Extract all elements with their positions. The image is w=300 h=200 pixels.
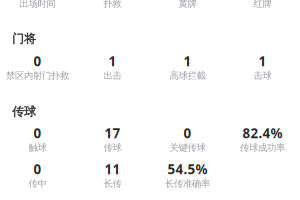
staticText: 17 (104, 124, 120, 142)
staticText: 出击 (103, 70, 121, 81)
staticText: 关键传球 (169, 142, 205, 153)
staticText: 黄牌 (178, 0, 196, 9)
staticText: 0 (33, 52, 41, 70)
staticText: 54.5% (167, 160, 207, 178)
staticText: 0 (183, 124, 191, 142)
staticText: 击球 (253, 70, 271, 81)
staticText: 传球 (103, 142, 121, 153)
staticText: 传球成功率 (240, 142, 285, 153)
staticText: 红牌 (253, 0, 271, 9)
staticText: 82.4% (242, 124, 282, 142)
staticText: 0 (33, 160, 41, 178)
staticText: 11 (104, 160, 120, 178)
staticText: 1 (183, 52, 191, 70)
staticText: 0 (33, 124, 41, 142)
staticText: 触球 (28, 142, 46, 153)
staticText: 高球拦截 (169, 70, 205, 81)
staticText: 长传准确率 (165, 178, 210, 189)
staticText: 扑救 (103, 0, 121, 9)
staticText: 禁区内射门扑救 (6, 70, 69, 81)
staticText: 长传 (103, 178, 121, 189)
staticText: 出场时间 (19, 0, 55, 9)
staticText: 1 (258, 52, 266, 70)
staticText: 门将 (12, 31, 36, 46)
staticText: 1 (108, 52, 116, 70)
staticText: 传中 (28, 178, 46, 189)
staticText: 传球 (12, 104, 36, 119)
